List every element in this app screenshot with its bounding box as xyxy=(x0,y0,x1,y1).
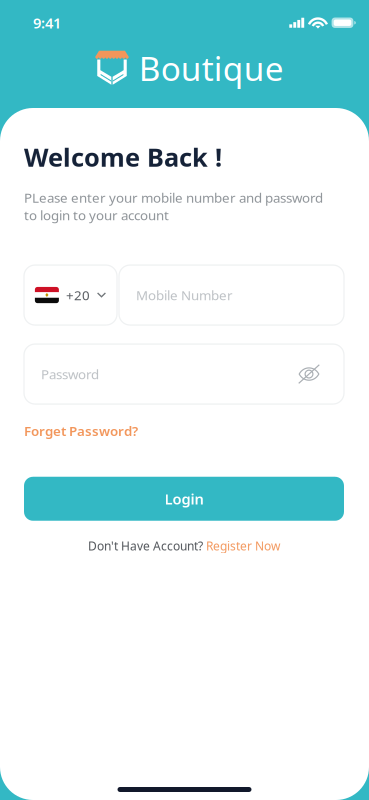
button[interactable]: Register Now xyxy=(206,538,280,554)
staticText: +20 xyxy=(66,286,90,304)
button[interactable]: Mobile Number xyxy=(119,265,344,325)
staticText: Don't Have Account? xyxy=(88,538,206,554)
staticText: Register Now xyxy=(206,538,280,554)
staticText: PLease enter your mobile number and pass… xyxy=(24,189,323,224)
staticText: Forget Password? xyxy=(24,422,138,440)
button[interactable]: Forget Password? xyxy=(24,422,138,440)
staticText: Login xyxy=(164,489,203,508)
staticText: Welcome Back ! xyxy=(24,140,222,174)
button[interactable]: +20 xyxy=(24,265,117,325)
button[interactable]: Login xyxy=(24,477,344,521)
staticText: Password xyxy=(41,365,99,383)
staticText: Boutique xyxy=(139,46,284,90)
staticText: Mobile Number xyxy=(136,286,233,304)
staticText: 9:41 xyxy=(33,13,61,32)
button[interactable]: Password xyxy=(24,344,344,404)
